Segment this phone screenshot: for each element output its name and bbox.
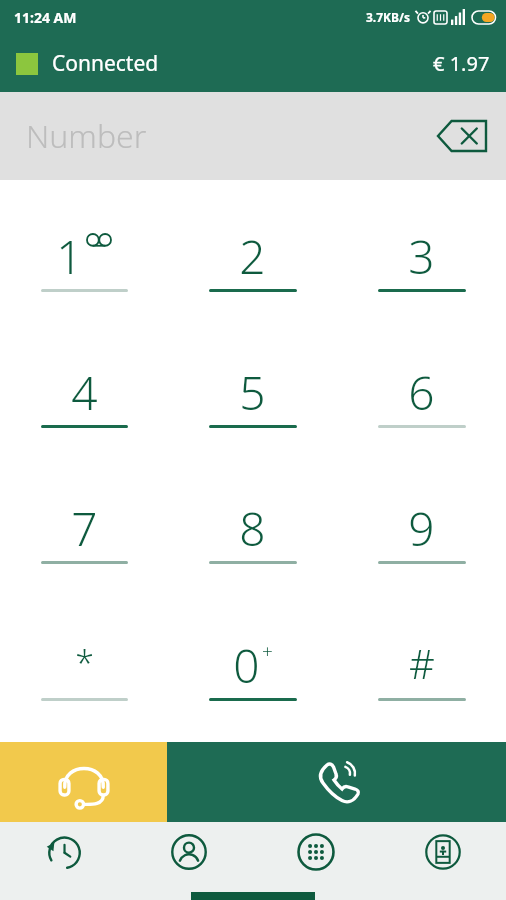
button[interactable]: Backspace [434, 116, 490, 156]
button[interactable]: Contacts [126, 822, 252, 882]
staticText: 2 [239, 225, 266, 283]
button[interactable]: 0 [168, 599, 337, 736]
button[interactable]: 9 [337, 462, 506, 599]
staticText: 3 [408, 225, 435, 283]
staticText: 5 [239, 361, 266, 419]
button[interactable]: Call [167, 742, 506, 822]
button[interactable]: 8 [168, 462, 337, 599]
staticText: 6 [408, 361, 435, 419]
button[interactable]: 5 [168, 326, 337, 462]
staticText: Connected [52, 49, 159, 78]
staticText: 4 [71, 361, 98, 419]
button[interactable]: 4 [0, 326, 168, 462]
button[interactable]: 2 [168, 190, 337, 326]
button[interactable]: 1 [0, 190, 168, 326]
staticText: # [409, 636, 435, 690]
staticText: 0 [233, 634, 260, 692]
button[interactable]: Top up [379, 822, 506, 882]
staticText: 3.7KB/s [366, 9, 411, 25]
staticText: * [75, 640, 94, 686]
staticText: 7 [71, 497, 98, 555]
button[interactable]: * [0, 599, 168, 736]
button[interactable]: # [337, 599, 506, 736]
staticText: + [262, 638, 273, 664]
button[interactable]: Headset call [0, 742, 167, 822]
staticText: 1 [56, 225, 83, 283]
button[interactable]: 7 [0, 462, 168, 599]
button[interactable]: Recent [0, 822, 126, 882]
staticText: 9 [408, 497, 435, 555]
staticText: 8 [239, 497, 266, 555]
staticText: 11:24 AM [14, 8, 77, 27]
button[interactable]: 6 [337, 326, 506, 462]
staticText: € 1.97 [433, 50, 490, 77]
button[interactable]: Connected [0, 34, 506, 92]
staticText: Number [26, 114, 147, 158]
button[interactable]: Number [0, 92, 506, 180]
button[interactable]: 3 [337, 190, 506, 326]
button[interactable]: Dialpad [252, 822, 379, 882]
